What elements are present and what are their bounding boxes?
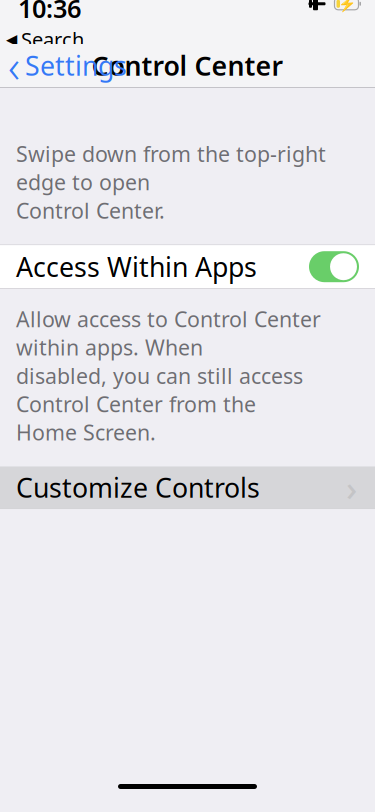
staticText: ◀	[6, 31, 17, 48]
staticText: Swipe down from the top-right edge to op…	[16, 140, 326, 225]
staticText: Allow access to Control Center within ap…	[16, 305, 321, 446]
staticText: ‹	[8, 35, 20, 96]
button[interactable]: Customize Controls	[0, 466, 375, 508]
staticText: ⚡	[337, 0, 355, 12]
staticText: Customize Controls	[16, 470, 260, 505]
staticText: Access Within Apps	[16, 249, 257, 284]
staticText: Control Center	[91, 48, 283, 83]
staticText: ›	[346, 464, 357, 510]
staticText: Settings	[25, 48, 127, 83]
staticText: Search	[21, 26, 84, 53]
button[interactable]: ‹	[0, 31, 127, 100]
staticText: 10:36	[18, 0, 81, 25]
button[interactable]: Back to Search	[6, 26, 84, 53]
button[interactable]: Access Within Apps	[0, 245, 375, 288]
